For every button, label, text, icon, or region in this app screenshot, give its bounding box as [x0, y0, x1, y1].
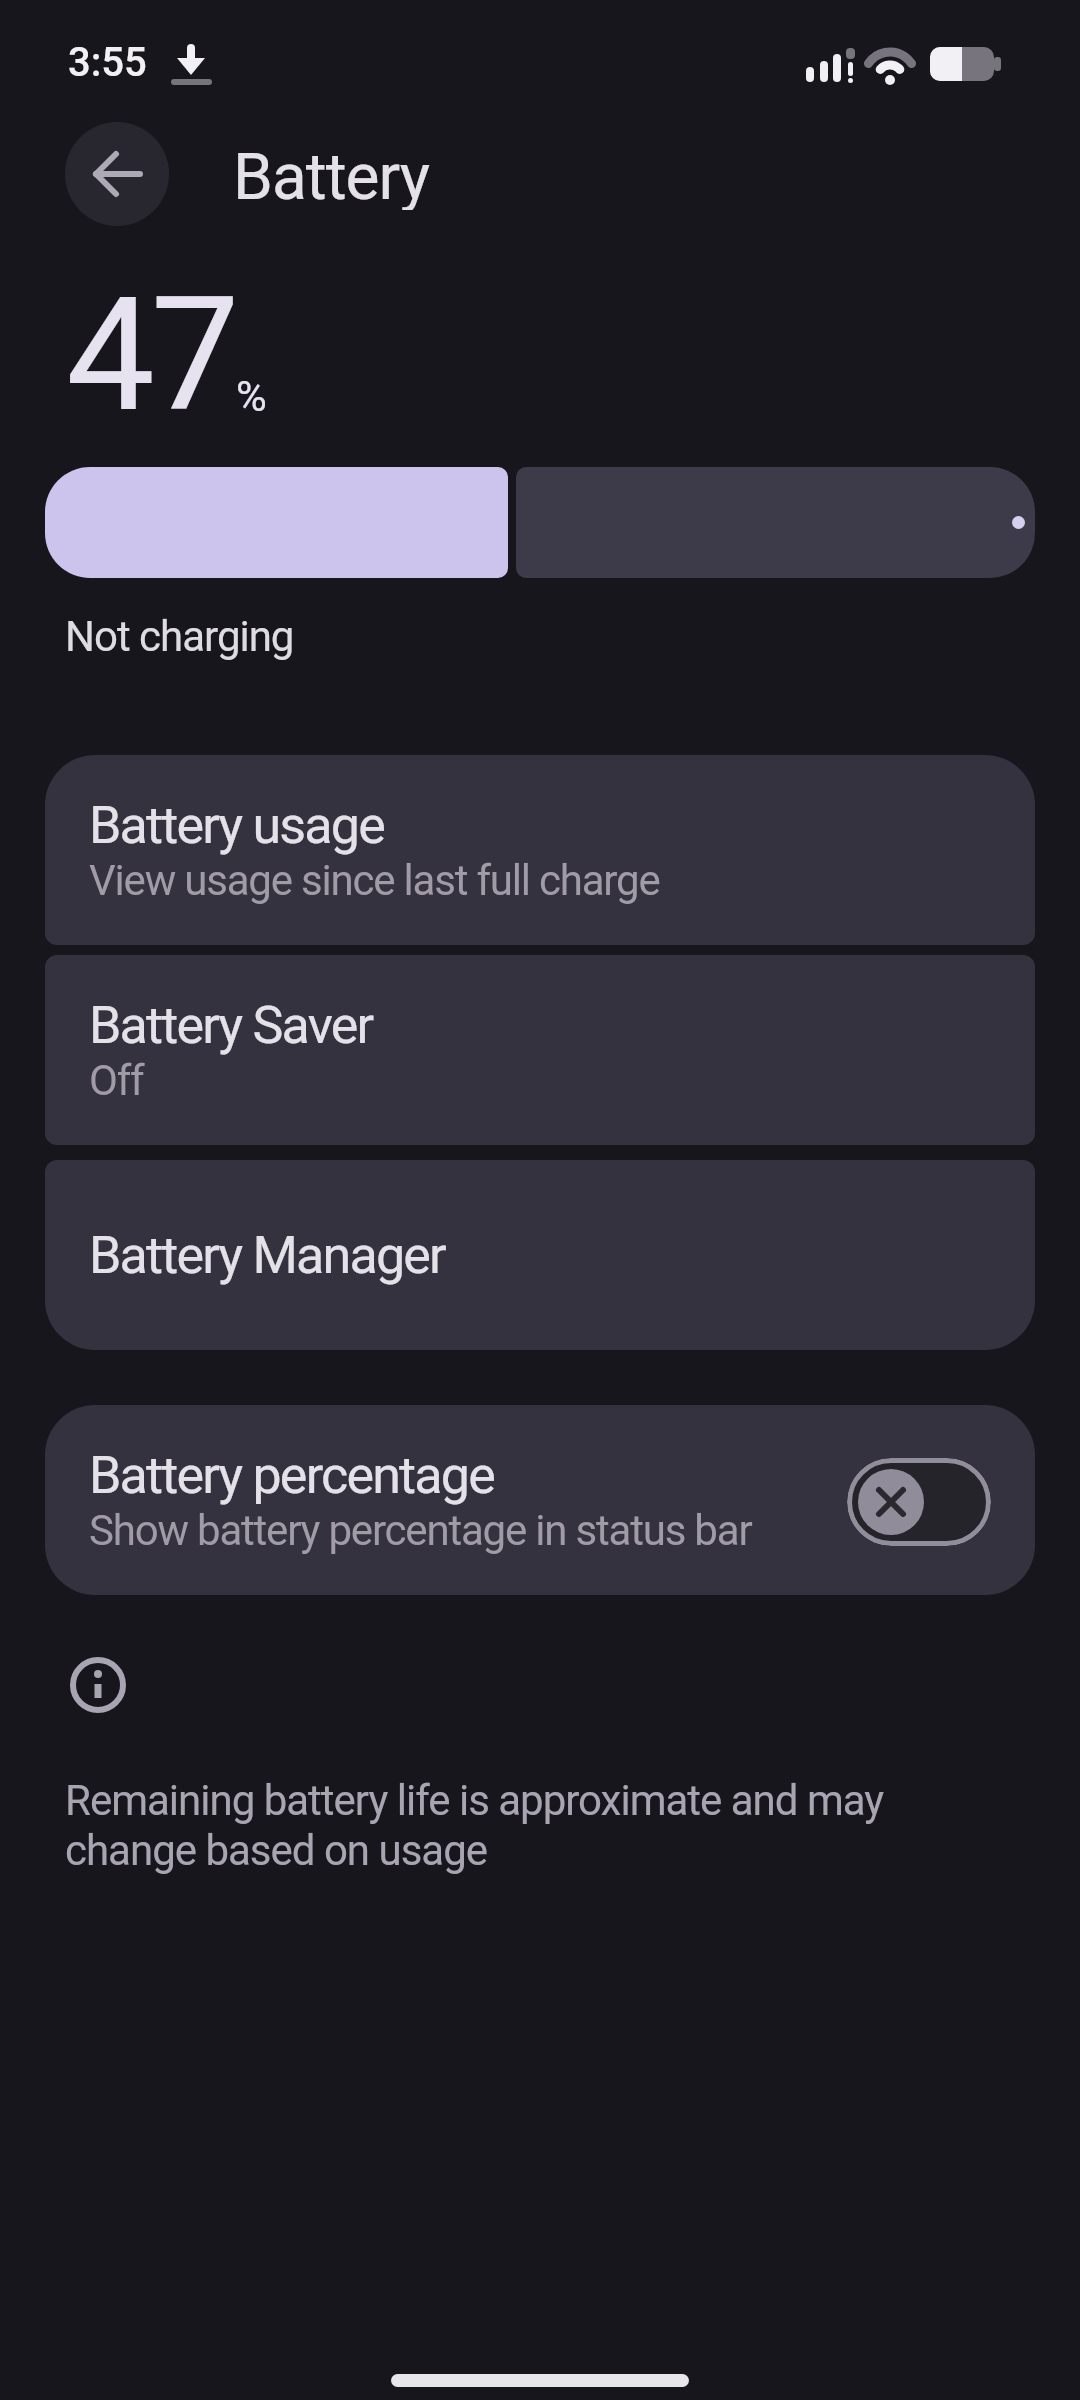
staticText: Show battery percentage in status bar [89, 1506, 752, 1555]
button[interactable]: Battery usage [45, 755, 1035, 945]
staticText: 47 [66, 262, 236, 447]
staticText: Battery Saver [89, 995, 373, 1056]
staticText: Not charging [65, 612, 294, 660]
button[interactable] [847, 1458, 991, 1546]
staticText: Battery percentage [89, 1445, 494, 1506]
button[interactable]: Battery Saver [45, 955, 1035, 1145]
button[interactable]: Battery Manager [45, 1160, 1035, 1350]
staticText: Remaining battery life is approximate an… [65, 1776, 884, 1875]
button[interactable]: Battery percentage [45, 1405, 1035, 1595]
staticText: Off [89, 1056, 144, 1105]
staticText: Battery [233, 140, 430, 210]
button[interactable] [65, 122, 169, 226]
staticText: Battery Manager [89, 1225, 445, 1286]
staticText: Battery usage [89, 795, 385, 856]
staticText: View usage since last full charge [89, 856, 660, 905]
staticText: % [236, 372, 267, 421]
staticText: 3:55 [68, 39, 147, 86]
